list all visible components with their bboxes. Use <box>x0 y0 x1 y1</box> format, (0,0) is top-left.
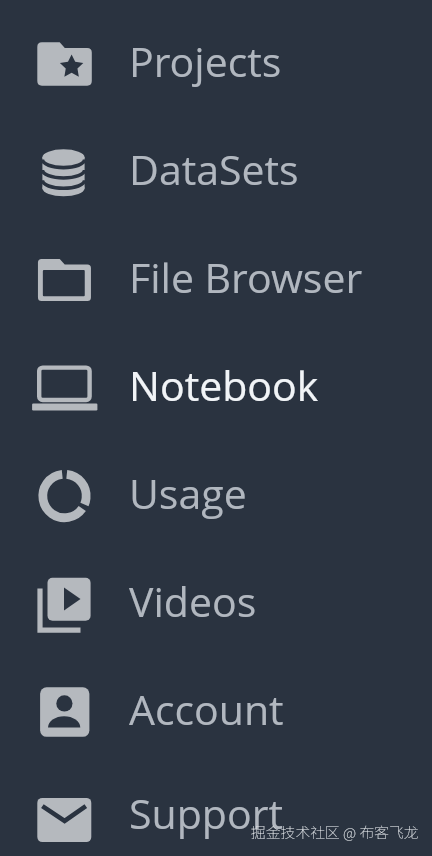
staticText: Support <box>129 785 283 841</box>
button[interactable]: Notebook <box>0 334 432 442</box>
staticText: 掘金技术社区 @ 布客飞龙 <box>251 821 419 842</box>
staticText: Notebook <box>129 357 319 413</box>
staticText: Account <box>129 681 284 737</box>
staticText: Usage <box>129 465 247 521</box>
button[interactable]: Usage <box>0 442 432 550</box>
button[interactable]: DataSets <box>0 118 432 226</box>
staticText: Videos <box>129 573 257 629</box>
staticText: File Browser <box>129 249 363 305</box>
staticText: DataSets <box>129 141 299 197</box>
staticText: Projects <box>129 33 282 89</box>
button[interactable]: Videos <box>0 550 432 658</box>
button[interactable]: Projects <box>0 10 432 118</box>
button[interactable]: Account <box>0 658 432 766</box>
button[interactable]: Support <box>0 766 432 856</box>
button[interactable]: File Browser <box>0 226 432 334</box>
